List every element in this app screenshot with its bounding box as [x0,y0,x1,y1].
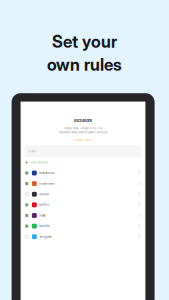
button[interactable]: Add website [21,157,145,168]
staticText: GitHub [39,193,49,196]
staticText: Search [28,150,36,153]
staticText: Set your [52,31,117,52]
staticText: General mode: AdGuard VPN is on [64,127,102,130]
staticText: Slack [39,214,45,217]
staticText: Change mode [73,138,93,141]
button[interactable]: Disney Plus [21,168,145,178]
staticText: own rules [47,55,122,75]
staticText: DuckDuckGo [39,182,55,185]
button[interactable]: GitHub [21,189,145,199]
staticText: Spotify [39,224,49,228]
staticText: Netflix [39,203,48,206]
button[interactable]: Telegram [21,231,145,242]
staticText: everywhere except websites added to excl… [59,131,107,134]
button[interactable]: Netflix [21,200,145,210]
staticText: Add website [31,161,49,164]
staticText: Telegram [39,235,51,238]
staticText: Disney Plus [39,171,54,174]
staticText: Exclusions [74,118,92,123]
button[interactable]: Change mode [73,134,93,142]
button[interactable]: Spotify [21,221,145,231]
button[interactable]: Slack [21,210,145,221]
button[interactable]: DuckDuckGo [21,178,145,189]
